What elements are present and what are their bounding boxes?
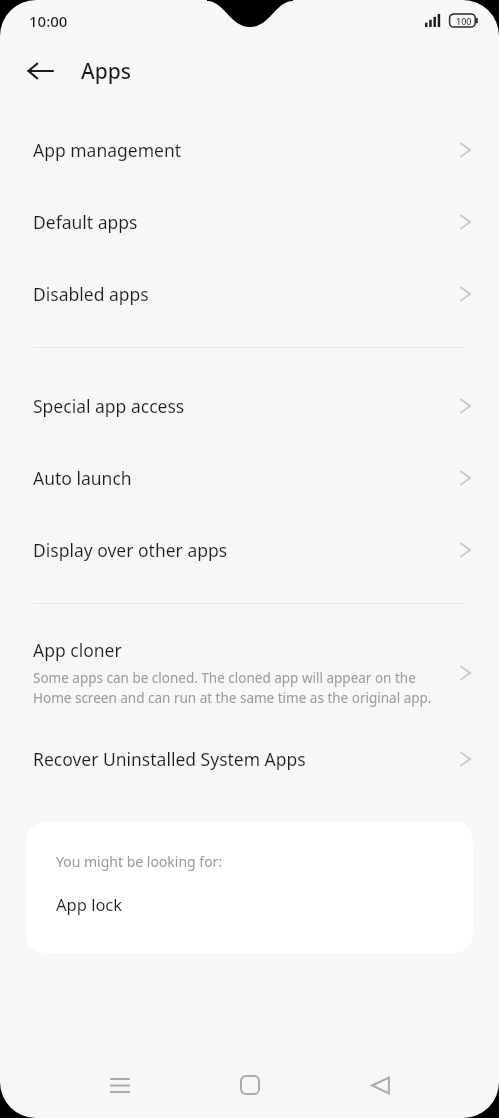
button[interactable]: Recent apps [91, 1060, 149, 1110]
button[interactable]: Back [351, 1060, 409, 1110]
staticText: Recover Uninstalled System Apps [33, 747, 460, 771]
staticText: Special app access [33, 394, 460, 418]
staticText: App lock [56, 893, 123, 915]
staticText: Default apps [33, 210, 460, 234]
staticText: 10:00 [29, 11, 68, 31]
button[interactable]: Home [221, 1060, 279, 1110]
button[interactable]: Special app access [0, 370, 499, 442]
staticText: App management [33, 138, 460, 162]
button[interactable]: Disabled apps [0, 258, 499, 330]
staticText: App cloner [33, 638, 122, 662]
button[interactable]: Display over other apps [0, 514, 499, 586]
staticText: Apps [81, 57, 132, 86]
staticText: You might be looking for: [56, 852, 223, 871]
button[interactable]: App cloner [0, 620, 499, 723]
staticText: Disabled apps [33, 282, 460, 306]
button[interactable]: Auto launch [0, 442, 499, 514]
button[interactable]: Recover Uninstalled System Apps [0, 723, 499, 795]
staticText: 100 [456, 15, 472, 27]
staticText: Auto launch [33, 466, 460, 490]
staticText: Display over other apps [33, 538, 460, 562]
button[interactable]: Default apps [0, 186, 499, 258]
button[interactable]: App lock [26, 871, 473, 953]
button[interactable]: Back [20, 51, 60, 91]
staticText: Some apps can be cloned. The cloned app … [33, 669, 450, 707]
button[interactable]: App management [0, 114, 499, 186]
